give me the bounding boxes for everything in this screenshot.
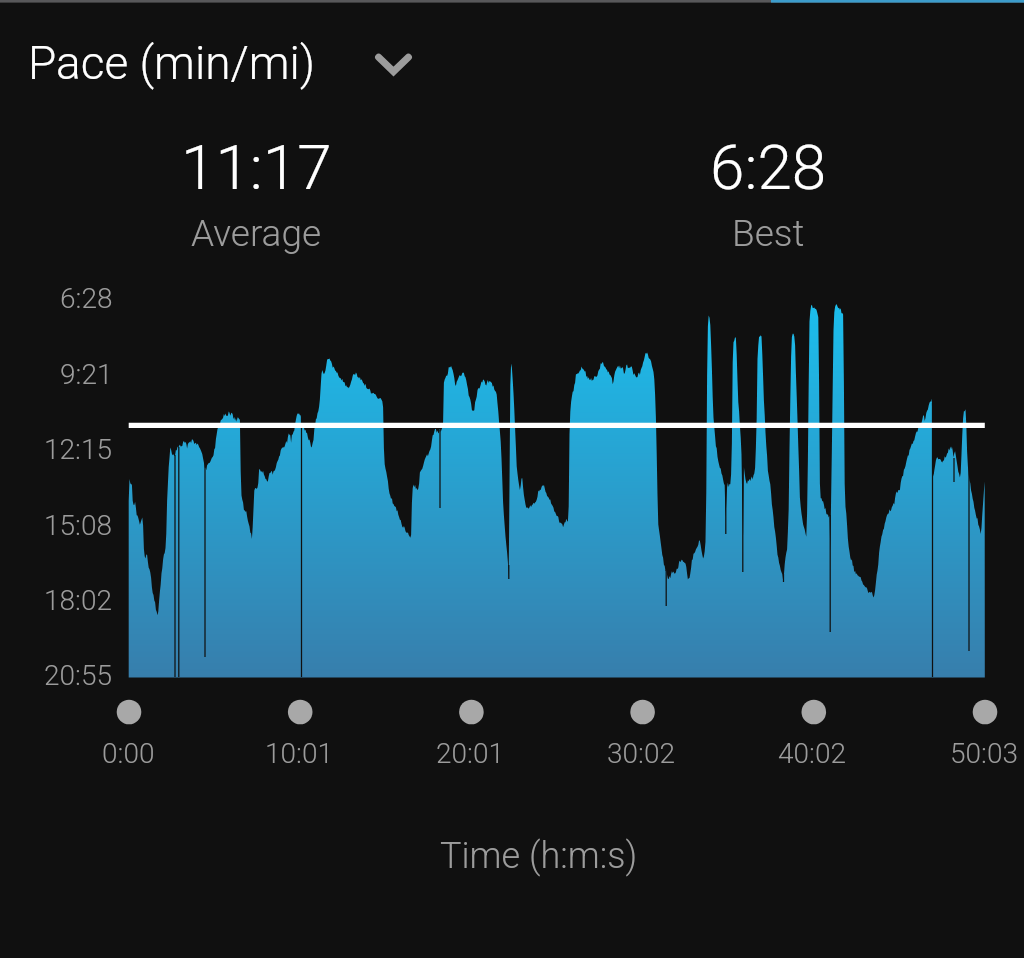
staticText: 15:08 [44,509,113,542]
staticText: 40:02 [778,737,847,770]
staticText: 0:00 [102,737,155,770]
staticText: Time (h:m:s) [440,835,638,877]
staticText: 12:15 [44,433,113,466]
staticText: 11:17 [181,131,332,204]
button[interactable]: Change metric: Pace (min/mi) [28,36,410,90]
staticText: Pace (min/mi) [28,36,315,90]
staticText: 6:28 [60,282,113,315]
staticText: Best [732,212,805,255]
staticText: 18:02 [44,584,113,617]
staticText: 20:01 [436,737,505,770]
staticText: 50:03 [950,737,1019,770]
staticText: 6:28 [710,131,827,204]
staticText: Average [191,212,322,255]
staticText: 30:02 [607,737,676,770]
staticText: 9:21 [60,358,113,391]
staticText: 20:55 [44,659,113,692]
staticText: 10:01 [265,737,334,770]
